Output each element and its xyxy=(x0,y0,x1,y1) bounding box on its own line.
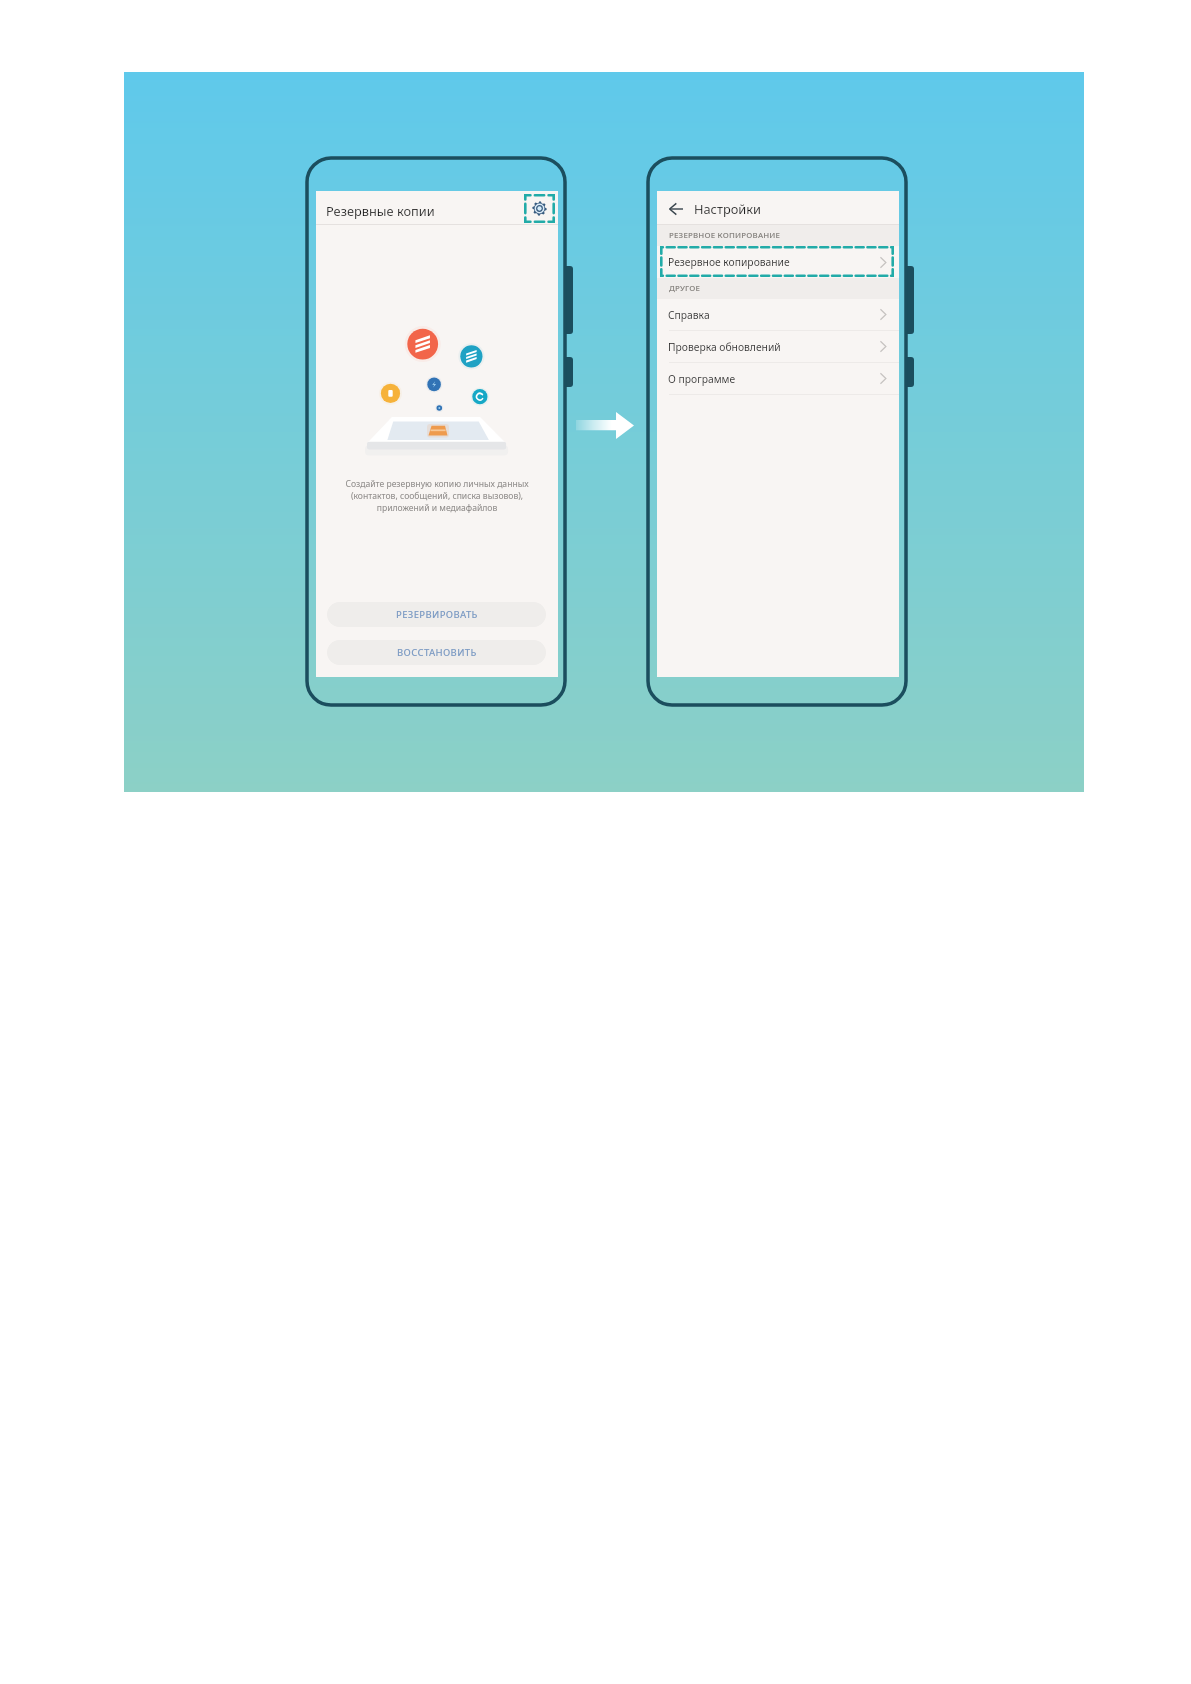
button[interactable]: О программе xyxy=(657,363,899,394)
button[interactable]: ВОССТАНОВИТЬ xyxy=(327,640,546,665)
staticText: РЕЗЕРВНОЕ КОПИРОВАНИЕ xyxy=(669,230,781,241)
button[interactable]: Back xyxy=(668,201,684,217)
staticText: Настройки xyxy=(694,200,761,217)
staticText: Резервное копирование xyxy=(668,255,879,269)
button[interactable]: Settings xyxy=(524,194,555,223)
staticText: Проверка обновлений xyxy=(668,340,879,354)
staticText: Справка xyxy=(668,308,879,322)
staticText: Резервные копии xyxy=(326,202,435,219)
staticText: О программе xyxy=(668,372,879,386)
staticText: ВОССТАНОВИТЬ xyxy=(397,646,477,659)
staticText: Создайте резервную копию личных данных (… xyxy=(322,478,552,514)
button[interactable]: Резервное копирование xyxy=(657,246,899,278)
staticText: ДРУГОЕ xyxy=(669,283,701,294)
button[interactable]: Проверка обновлений xyxy=(657,331,899,362)
staticText: РЕЗЕРВИРОВАТЬ xyxy=(396,608,478,621)
button[interactable]: РЕЗЕРВИРОВАТЬ xyxy=(327,602,546,627)
button[interactable]: Справка xyxy=(657,299,899,330)
